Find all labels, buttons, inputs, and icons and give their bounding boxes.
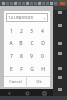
- staticText: 14 UNDROID: [8, 15, 34, 21]
- button[interactable]: 3: [26, 25, 37, 37]
- button[interactable]: D: [37, 37, 48, 50]
- staticText: C: [30, 40, 34, 47]
- button[interactable]: Ok: [27, 77, 50, 86]
- button[interactable]: 9: [26, 50, 37, 63]
- button[interactable]: Back: [6, 90, 12, 96]
- button[interactable]: H: [37, 63, 48, 76]
- staticText: 3: [30, 28, 33, 35]
- staticText: E: [10, 66, 13, 73]
- staticText: 2: [20, 28, 23, 35]
- button[interactable]: 0: [37, 50, 48, 63]
- button[interactable]: Home: [24, 90, 30, 96]
- staticText: Ok: [36, 79, 42, 84]
- button[interactable]: C: [26, 37, 37, 50]
- button[interactable]: 7: [6, 50, 16, 63]
- button[interactable]: 1: [6, 25, 16, 37]
- staticText: 7: [10, 53, 13, 60]
- staticText: Cancel: [9, 79, 22, 84]
- button[interactable]: A: [6, 37, 16, 50]
- button[interactable]: 8: [16, 50, 26, 63]
- button[interactable]: F: [16, 63, 26, 76]
- staticText: B: [19, 40, 23, 47]
- button[interactable]: B: [16, 37, 26, 50]
- staticText: A: [9, 40, 13, 47]
- staticText: G: [30, 66, 34, 73]
- staticText: D: [41, 40, 45, 47]
- staticText: 4: [41, 28, 44, 35]
- staticText: 8: [20, 53, 23, 60]
- button[interactable]: 2: [16, 25, 26, 37]
- staticText: 0: [41, 53, 44, 60]
- button[interactable]: 14 UNDROID: [6, 13, 48, 22]
- button[interactable]: 4: [37, 25, 48, 37]
- button[interactable]: Recent apps: [41, 90, 47, 96]
- button[interactable]: Cancel: [4, 77, 26, 86]
- staticText: H: [41, 66, 45, 73]
- staticText: F: [20, 66, 23, 73]
- staticText: 9: [30, 53, 33, 60]
- button[interactable]: G: [26, 63, 37, 76]
- staticText: 1: [10, 28, 13, 35]
- button[interactable]: E: [6, 63, 16, 76]
